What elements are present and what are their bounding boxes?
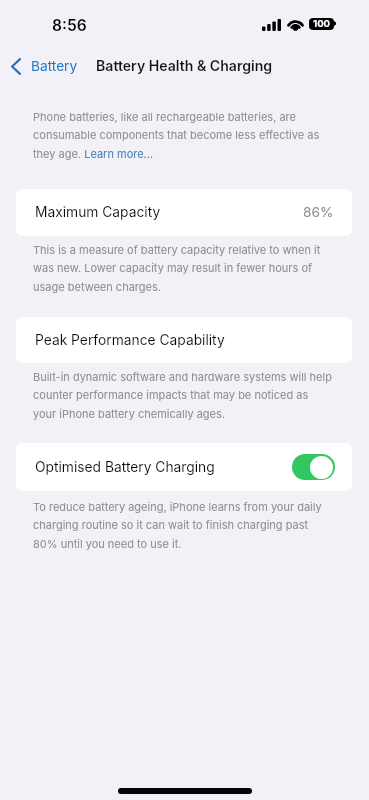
button[interactable]: Peak Performance Capability	[16, 317, 352, 363]
staticText: Maximum Capacity	[35, 204, 161, 221]
staticText: Phone batteries, like all rechargeable b…	[33, 110, 333, 161]
staticText: Battery Health & Charging	[96, 57, 273, 74]
staticText: This is a measure of battery capacity re…	[33, 243, 333, 294]
button[interactable]: Back to Battery	[4, 52, 84, 80]
button[interactable]: Maximum Capacity	[16, 189, 352, 236]
button[interactable]: Learn more	[84, 145, 154, 163]
staticText: To reduce battery ageing, iPhone learns …	[33, 500, 333, 551]
staticText: 8:56	[52, 16, 87, 35]
staticText: 86%	[303, 204, 334, 221]
button[interactable]: Optimised Battery Charging toggle	[292, 454, 335, 480]
staticText: 100	[313, 18, 331, 30]
button[interactable]: Optimised Battery Charging	[16, 443, 352, 491]
staticText: Built-in dynamic software and hardware s…	[33, 370, 333, 421]
staticText: Peak Performance Capability	[35, 332, 225, 349]
staticText: Optimised Battery Charging	[35, 459, 215, 476]
staticText: Battery	[31, 58, 78, 75]
